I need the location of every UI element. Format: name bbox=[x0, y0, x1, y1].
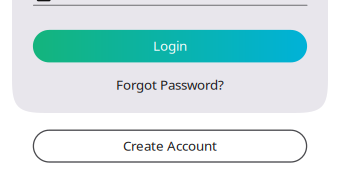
staticText: Create Account bbox=[123, 137, 217, 154]
button[interactable]: Login bbox=[33, 30, 307, 62]
staticText: Forgot Password? bbox=[116, 76, 224, 93]
button[interactable]: Create Account bbox=[33, 130, 307, 162]
button[interactable]: Forgot Password? bbox=[33, 74, 307, 94]
staticText: Login bbox=[153, 37, 187, 54]
